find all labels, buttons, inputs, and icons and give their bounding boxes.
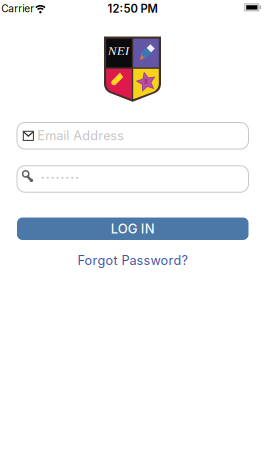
staticText: Forgot Password?: [77, 253, 187, 268]
staticText: Carrier: [1, 2, 34, 15]
staticText: 12:50 PM: [107, 2, 157, 15]
staticText: LOG IN: [111, 221, 155, 237]
staticText: 8: [144, 77, 148, 86]
staticText: Email Address: [37, 128, 124, 143]
staticText: NEI: [108, 43, 129, 58]
